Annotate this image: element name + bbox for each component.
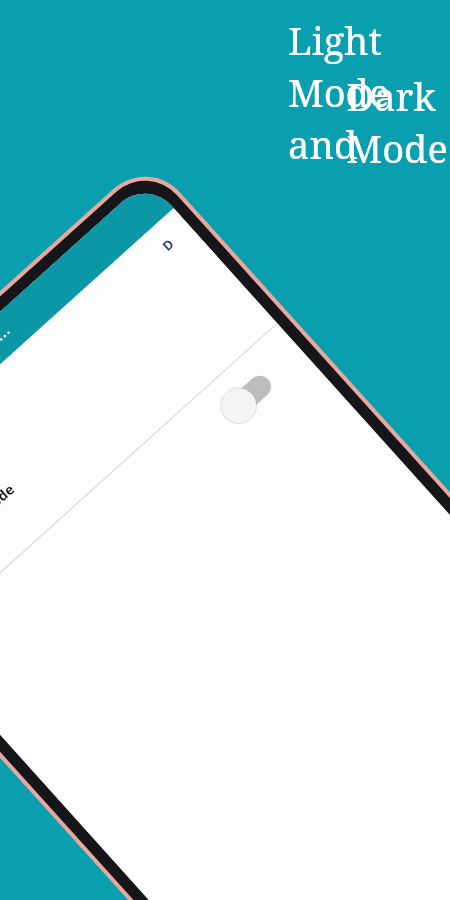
- button[interactable]: Light Mode and Dark Mode app preview: [0, 0, 450, 900]
